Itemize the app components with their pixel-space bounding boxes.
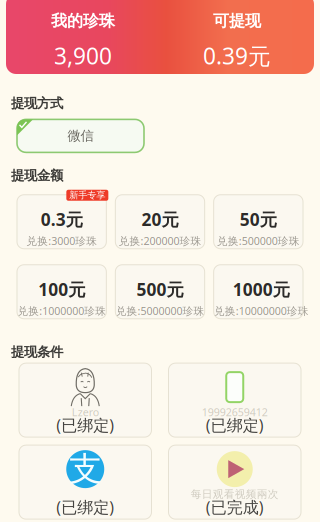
button[interactable]: 0.3元 [17,195,106,249]
staticText: 50元 [240,208,277,231]
staticText: 提现方式 [11,95,63,111]
staticText: 兑换:200000珍珠 [118,234,201,248]
staticText: 兑换:5000000珍珠 [115,304,204,318]
button[interactable]: 100元 [17,265,106,319]
staticText: 微信 [67,128,93,144]
staticText: 0.39元 [203,41,271,71]
button[interactable]: 19992659412 [168,363,301,437]
staticText: 支 [69,449,102,490]
staticText: 500元 [136,278,183,301]
staticText: 我的珍珠 [51,11,115,31]
staticText: 每日观看视频兩次 [191,488,279,501]
staticText: (已绑定) [206,414,264,436]
button[interactable]: 50元 [214,195,303,249]
button[interactable]: 20元 [115,195,205,249]
button[interactable]: 500元 [115,265,205,319]
button[interactable]: 支 [19,445,151,519]
staticText: 0.3元 [41,208,83,231]
staticText: (已完成) [206,496,264,518]
staticText: 3,900 [54,41,112,71]
button[interactable]: 每日观看视频兩次 [168,445,301,519]
staticText: (已绑定) [56,414,114,436]
staticText: (已绑定) [56,496,114,518]
staticText: 可提现 [213,11,261,31]
staticText: 新手专享 [69,189,105,201]
button[interactable]: Lzero [19,363,151,437]
staticText: 提现金额 [11,167,63,184]
staticText: 100元 [38,278,85,301]
staticText: 1000元 [233,278,290,301]
staticText: 20元 [141,208,178,231]
staticText: Lzero [72,405,99,419]
staticText: 19992659412 [202,405,268,419]
staticText: 兑换:10000000珍珠 [214,304,309,318]
button[interactable]: 1000元 [214,265,303,319]
staticText: 兑换:500000珍珠 [217,234,300,248]
staticText: 提现条件 [11,344,63,360]
staticText: 兑换:3000珍珠 [26,234,97,248]
staticText: 兑换:1000000珍珠 [17,304,106,318]
